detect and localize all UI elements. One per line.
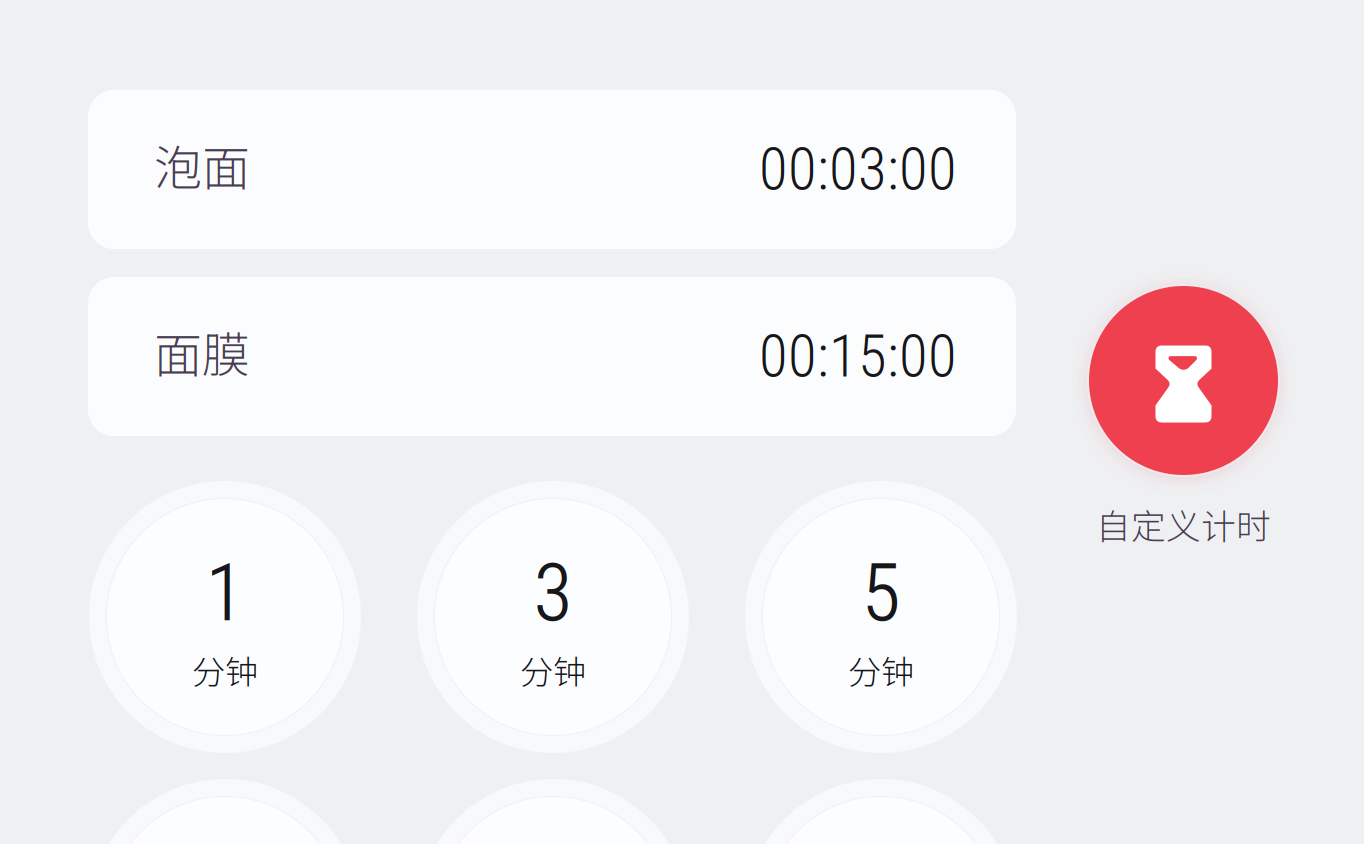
staticText: 00:15:00 xyxy=(759,322,957,391)
button[interactable]: 15 xyxy=(417,779,689,844)
staticText: 分钟 xyxy=(192,646,258,694)
button[interactable]: 泡面 xyxy=(88,90,1016,249)
staticText: 00:03:00 xyxy=(759,135,957,204)
staticText: 1 xyxy=(205,546,244,640)
button[interactable]: 30 xyxy=(745,779,1017,844)
button[interactable]: 1 xyxy=(89,481,361,753)
staticText: 泡面 xyxy=(154,130,250,199)
staticText: 5 xyxy=(861,546,900,640)
button[interactable]: 3 xyxy=(417,481,689,753)
button[interactable]: 10 xyxy=(89,779,361,844)
staticText: 分钟 xyxy=(848,646,914,694)
button[interactable]: 5 xyxy=(745,481,1017,753)
staticText: 面膜 xyxy=(154,317,250,386)
staticText: 分钟 xyxy=(520,646,586,694)
staticText: 自定义计时 xyxy=(1096,499,1271,549)
staticText: 3 xyxy=(533,546,572,640)
button[interactable]: 自定义计时 xyxy=(1089,286,1278,549)
button[interactable]: 面膜 xyxy=(88,277,1016,436)
